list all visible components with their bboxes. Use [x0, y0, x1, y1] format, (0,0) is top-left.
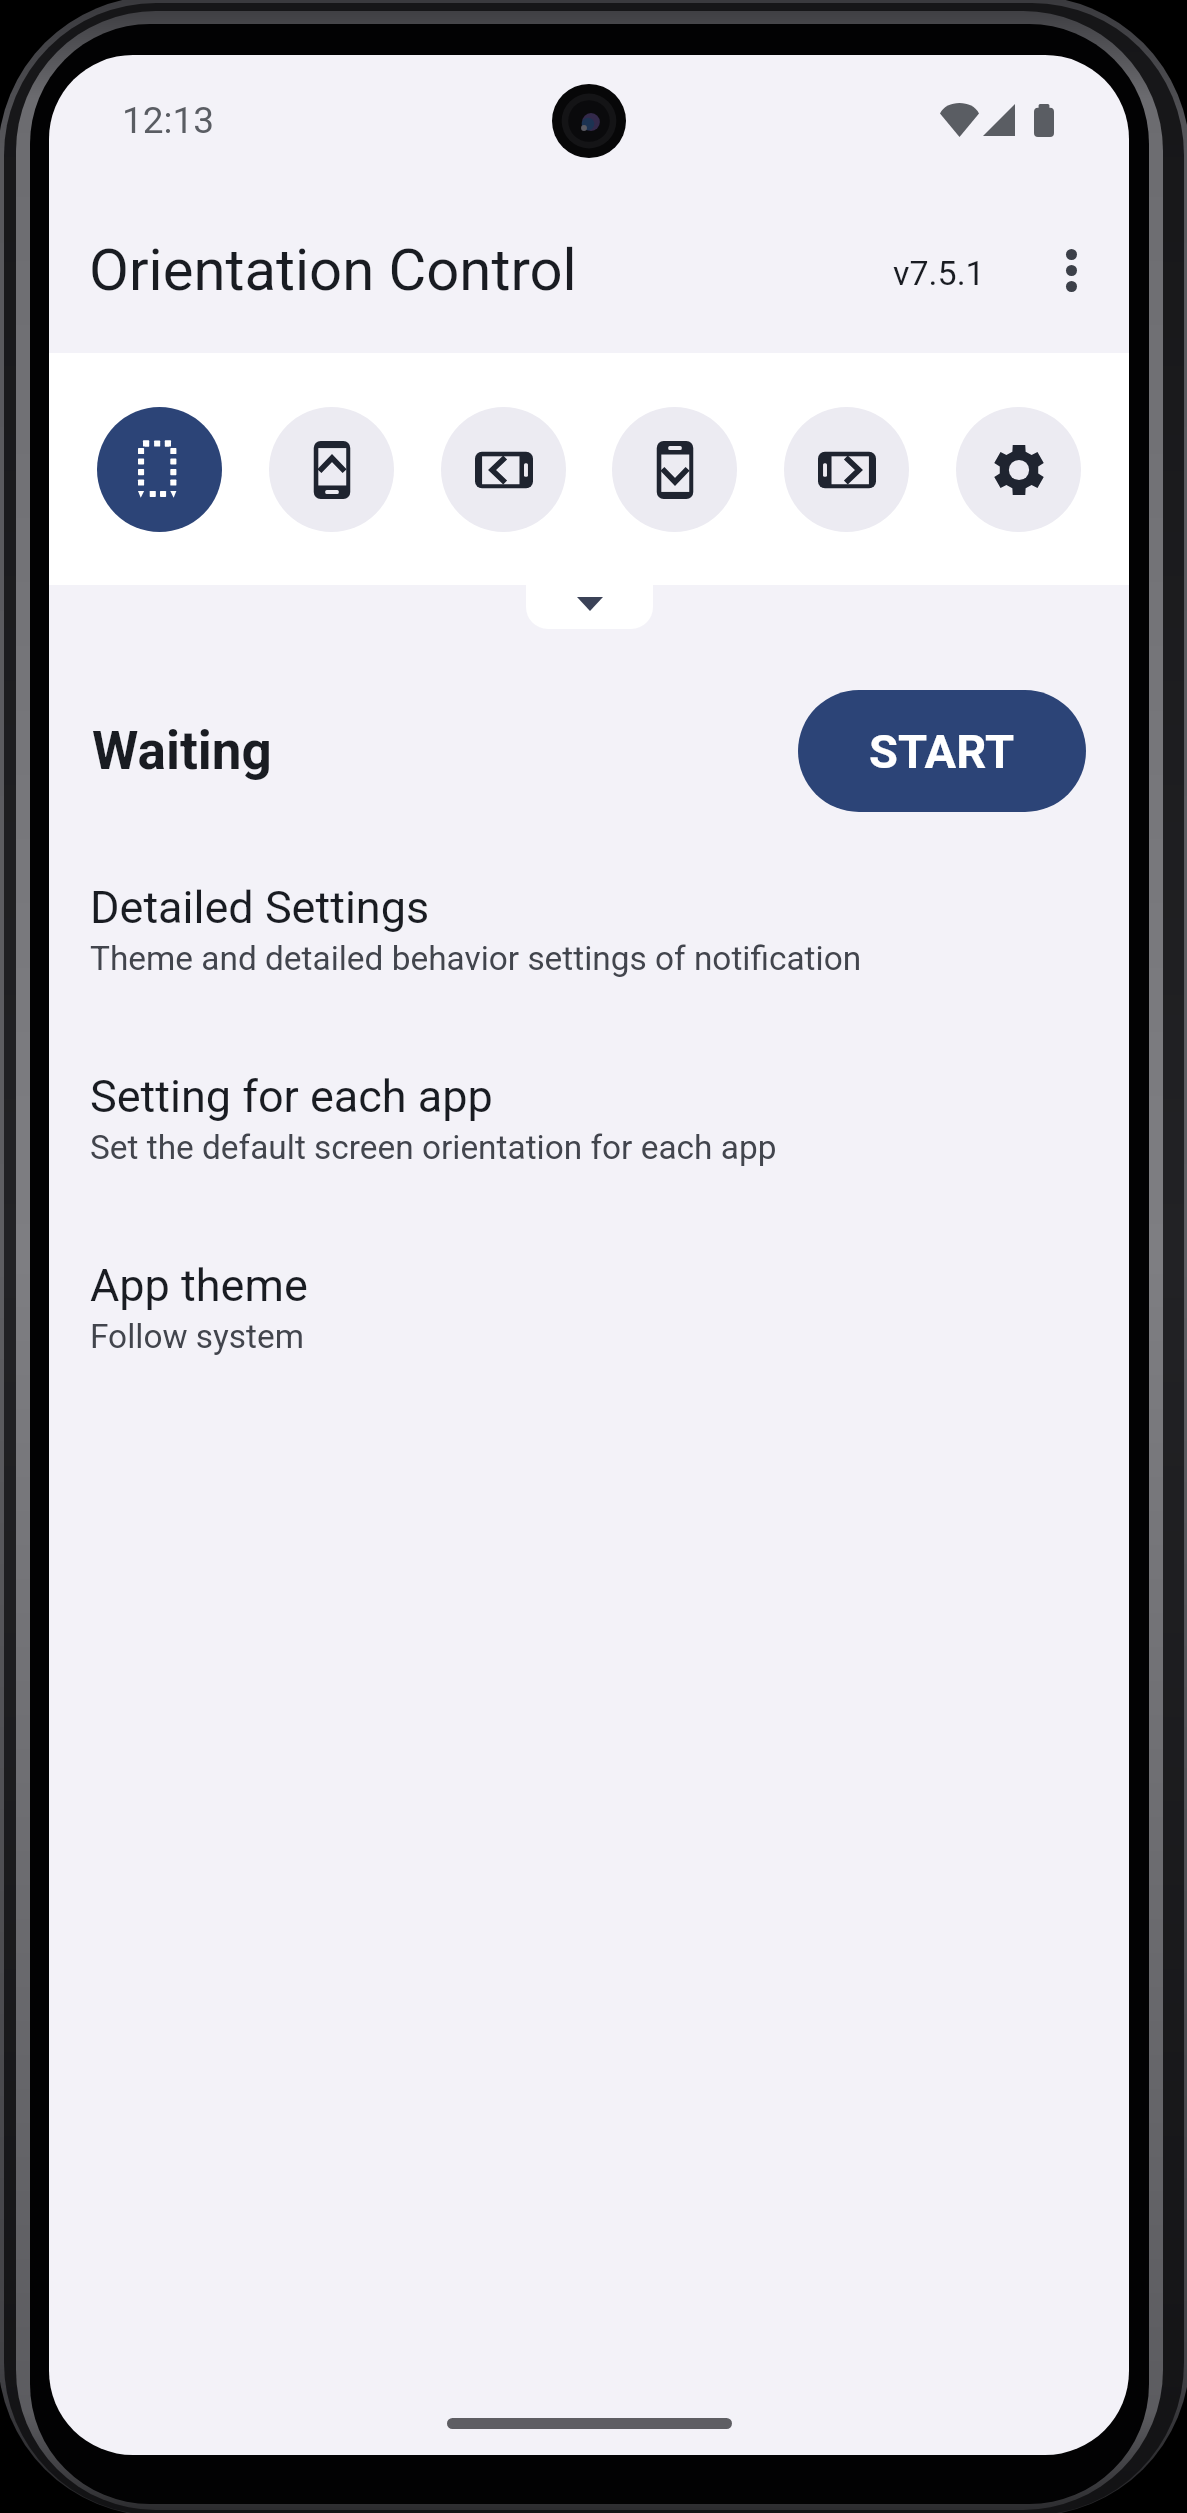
staticText: Follow system [90, 1317, 304, 1356]
button[interactable]: Landscape [784, 407, 909, 532]
button[interactable]: Reverse landscape [441, 407, 566, 532]
staticText: Waiting [92, 720, 272, 782]
button[interactable]: Orientation unspecified [97, 407, 222, 532]
staticText: START [869, 724, 1015, 779]
staticText: Setting for each app [90, 1070, 493, 1123]
button[interactable]: Settings [956, 407, 1081, 532]
staticText: Orientation Control [89, 236, 577, 304]
button[interactable]: Setting for each app [49, 1036, 1129, 1225]
button[interactable]: App theme [49, 1225, 1129, 1414]
button[interactable]: Detailed Settings [49, 847, 1129, 1036]
button[interactable]: Expand orientation panel [526, 585, 653, 629]
button[interactable]: Portrait [269, 407, 394, 532]
staticText: Theme and detailed behavior settings of … [90, 939, 862, 978]
button[interactable]: Reverse portrait [612, 407, 737, 532]
button[interactable]: START [798, 690, 1086, 812]
staticText: v7.5.1 [893, 253, 985, 293]
button[interactable]: More options [1023, 222, 1119, 318]
staticText: Set the default screen orientation for e… [90, 1128, 777, 1167]
staticText: 12:13 [122, 99, 215, 142]
staticText: App theme [90, 1259, 308, 1312]
staticText: Detailed Settings [90, 881, 430, 934]
